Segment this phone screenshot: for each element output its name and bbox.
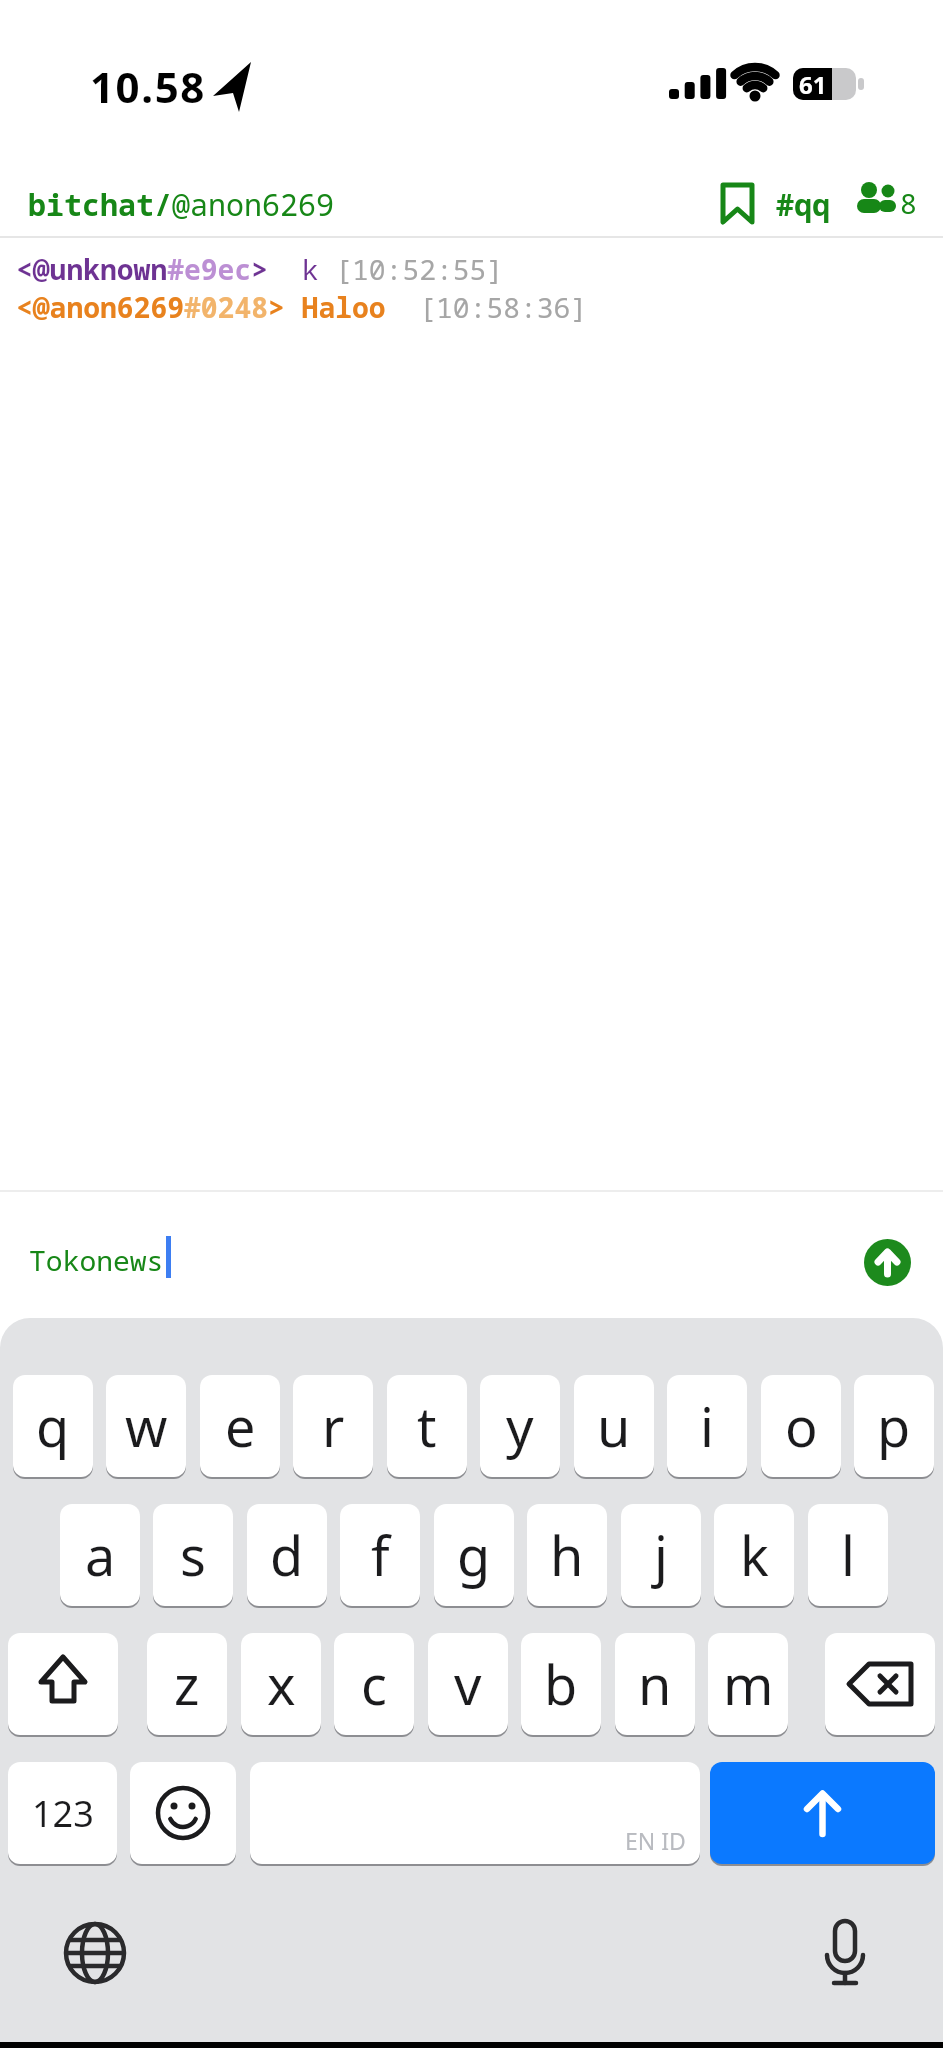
button[interactable]: a (60, 1504, 140, 1606)
staticText: u (597, 1389, 631, 1463)
button[interactable] (130, 1762, 236, 1864)
button[interactable]: p (854, 1375, 934, 1477)
staticText: q (36, 1389, 70, 1463)
staticText: a (85, 1518, 116, 1592)
button[interactable] (710, 1762, 935, 1864)
button[interactable] (825, 1633, 935, 1735)
button[interactable]: r (293, 1375, 373, 1477)
button[interactable] (63, 1921, 127, 1985)
staticText: c (361, 1647, 387, 1721)
staticText: 10.58 (90, 58, 206, 115)
button[interactable]: g (434, 1504, 514, 1606)
button[interactable] (815, 1915, 875, 1995)
staticText: s (180, 1518, 206, 1592)
button[interactable]: f (340, 1504, 420, 1606)
button[interactable]: i (667, 1375, 747, 1477)
staticText: bitchat/@anon6269 (28, 184, 334, 225)
staticText: <@anon6269#0248> Haloo [10:58:36] (16, 288, 588, 326)
staticText: i (700, 1389, 714, 1463)
staticText: h (550, 1518, 584, 1592)
button[interactable]: w (106, 1375, 186, 1477)
staticText: Tokonews (29, 1241, 164, 1279)
staticText: 61 (799, 68, 827, 101)
button[interactable]: c (334, 1633, 414, 1735)
button[interactable]: t (387, 1375, 467, 1477)
button[interactable]: o (761, 1375, 841, 1477)
button[interactable]: q (13, 1375, 93, 1477)
staticText: <@unknown#e9ec> k [10:52:55] (16, 250, 504, 288)
button[interactable] (864, 1239, 911, 1286)
button[interactable]: EN ID (250, 1762, 700, 1864)
button[interactable]: n (615, 1633, 695, 1735)
button[interactable] (8, 1633, 118, 1735)
staticText: b (544, 1647, 578, 1721)
button[interactable]: 8 (852, 180, 922, 222)
staticText: t (417, 1389, 437, 1463)
button[interactable]: #qq (776, 184, 830, 225)
button[interactable]: Tokonews (0, 1192, 943, 1318)
button[interactable]: z (147, 1633, 227, 1735)
button[interactable]: l (808, 1504, 888, 1606)
staticText: k (740, 1518, 769, 1592)
staticText: e (225, 1389, 256, 1463)
button[interactable]: u (574, 1375, 654, 1477)
staticText: x (267, 1647, 296, 1721)
button[interactable] (712, 176, 762, 226)
staticText: g (457, 1518, 491, 1592)
staticText: 123 (32, 1789, 94, 1838)
button[interactable]: d (247, 1504, 327, 1606)
button[interactable]: v (428, 1633, 508, 1735)
button[interactable]: m (708, 1633, 788, 1735)
staticText: o (785, 1389, 818, 1463)
staticText: z (174, 1647, 200, 1721)
button[interactable]: e (200, 1375, 280, 1477)
staticText: l (841, 1518, 855, 1592)
staticText: EN ID (625, 1825, 686, 1856)
staticText: y (506, 1389, 534, 1463)
staticText: f (371, 1518, 390, 1592)
button[interactable]: k (714, 1504, 794, 1606)
button[interactable]: b (521, 1633, 601, 1735)
staticText: p (877, 1389, 911, 1463)
staticText: m (723, 1647, 774, 1721)
button[interactable]: j (621, 1504, 701, 1606)
staticText: w (125, 1389, 168, 1463)
button[interactable]: x (241, 1633, 321, 1735)
button[interactable]: bitchat/@anon6269 (24, 178, 330, 219)
button[interactable]: s (153, 1504, 233, 1606)
staticText: r (322, 1389, 345, 1463)
staticText: n (638, 1647, 672, 1721)
button[interactable]: h (527, 1504, 607, 1606)
staticText: v (454, 1647, 482, 1721)
staticText: d (270, 1518, 304, 1592)
staticText: j (654, 1518, 668, 1592)
button[interactable]: 123 (8, 1762, 117, 1864)
staticText: 8 (900, 184, 917, 222)
button[interactable]: y (480, 1375, 560, 1477)
